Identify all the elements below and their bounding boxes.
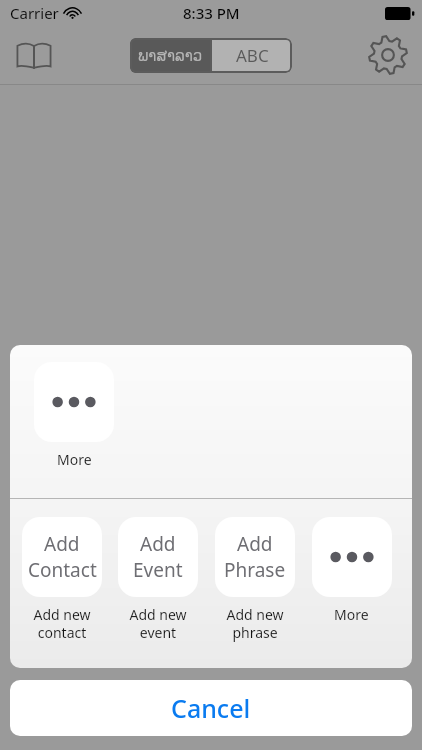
staticText: More <box>57 450 92 469</box>
staticText: 8:33 PM <box>183 3 240 23</box>
staticText: Add new event <box>129 605 187 642</box>
staticText: Add <box>44 531 80 557</box>
button[interactable]: ພາສາລາວ <box>130 38 210 73</box>
staticText: Add <box>140 531 176 557</box>
staticText: More <box>334 605 369 624</box>
button[interactable]: More <box>24 362 124 469</box>
button[interactable]: More options <box>303 517 400 624</box>
staticText: Add <box>237 531 273 557</box>
staticText: ພາສາລາວ <box>138 47 203 64</box>
staticText: Add new contact <box>33 605 91 642</box>
button[interactable]: Settings <box>362 29 414 81</box>
button[interactable]: Add <box>14 517 110 642</box>
staticText: Phrase <box>224 557 286 583</box>
staticText: Cancel <box>171 691 251 725</box>
staticText: Contact <box>28 557 97 583</box>
button[interactable]: Dictionary <box>8 29 60 81</box>
staticText: Carrier <box>10 3 59 23</box>
button[interactable]: Cancel <box>10 680 412 736</box>
staticText: Add new phrase <box>226 605 284 642</box>
staticText: ABC <box>236 44 269 67</box>
button[interactable]: Add <box>110 517 206 642</box>
staticText: Event <box>133 557 183 583</box>
button[interactable]: ABC <box>212 38 292 73</box>
button[interactable]: Add <box>206 517 303 642</box>
